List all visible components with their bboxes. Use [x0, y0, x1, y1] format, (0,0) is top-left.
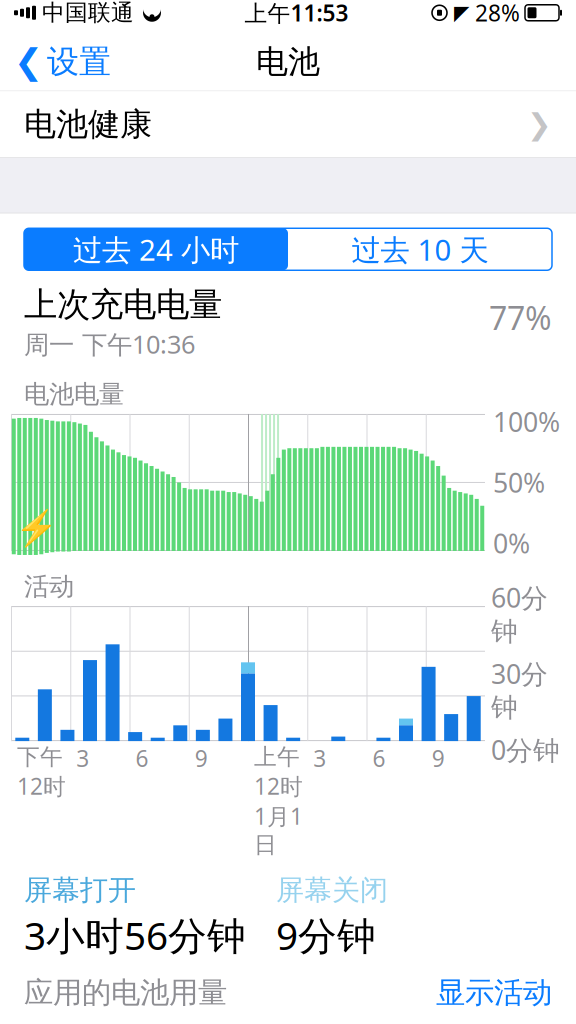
staticText: ❯	[527, 108, 552, 141]
staticText: 电池	[256, 42, 320, 81]
staticText: 设置	[47, 42, 111, 81]
staticText: 6	[372, 743, 385, 773]
staticText: 活动	[24, 571, 74, 602]
staticText: 显示活动	[436, 975, 552, 1011]
staticText: 应用的电池用量	[24, 975, 227, 1011]
staticText: 周一 下午10:36	[24, 327, 195, 361]
button[interactable]: ❮	[0, 36, 111, 87]
button[interactable]: 过去 24 小时	[24, 228, 288, 270]
staticText: 3	[313, 743, 326, 773]
staticText: 3	[76, 743, 89, 773]
staticText: 60分钟	[491, 580, 548, 648]
staticText: 电池电量	[24, 379, 124, 410]
staticText: 28%	[475, 0, 520, 28]
staticText: 12时	[254, 771, 303, 801]
staticText: 9分钟	[276, 909, 376, 961]
staticText: 屏幕打开	[24, 873, 136, 907]
staticText: 上午11:53	[244, 0, 348, 28]
staticText: ❮	[14, 42, 43, 81]
staticText: 12时	[17, 771, 66, 801]
staticText: 3小时56分钟	[24, 909, 246, 961]
staticText: 100%	[493, 404, 560, 439]
staticText: 50%	[493, 465, 545, 500]
staticText: 中国联通	[42, 0, 134, 27]
button[interactable]: 显示活动	[436, 969, 552, 1017]
staticText: 过去 24 小时	[73, 230, 239, 269]
staticText: 过去 10 天	[351, 230, 488, 269]
staticText: 6	[135, 743, 148, 773]
staticText: 77%	[489, 296, 552, 339]
button[interactable]: 电池健康	[0, 91, 576, 157]
button[interactable]: 过去 10 天	[288, 228, 552, 270]
staticText: 下午	[17, 743, 63, 771]
staticText: 9	[195, 743, 208, 773]
staticText: 9	[432, 743, 445, 773]
staticText: 0%	[493, 526, 530, 561]
staticText: 30分钟	[491, 656, 548, 724]
staticText: 电池健康	[24, 105, 152, 144]
staticText: ⚡	[15, 508, 58, 548]
staticText: 上午	[254, 743, 300, 771]
staticText: 屏幕关闭	[276, 873, 388, 907]
staticText: 0分钟	[491, 732, 560, 767]
staticText: 1月1日	[254, 801, 303, 859]
staticText: 上次充电电量	[24, 284, 222, 325]
staticText: ◤	[454, 1, 469, 24]
